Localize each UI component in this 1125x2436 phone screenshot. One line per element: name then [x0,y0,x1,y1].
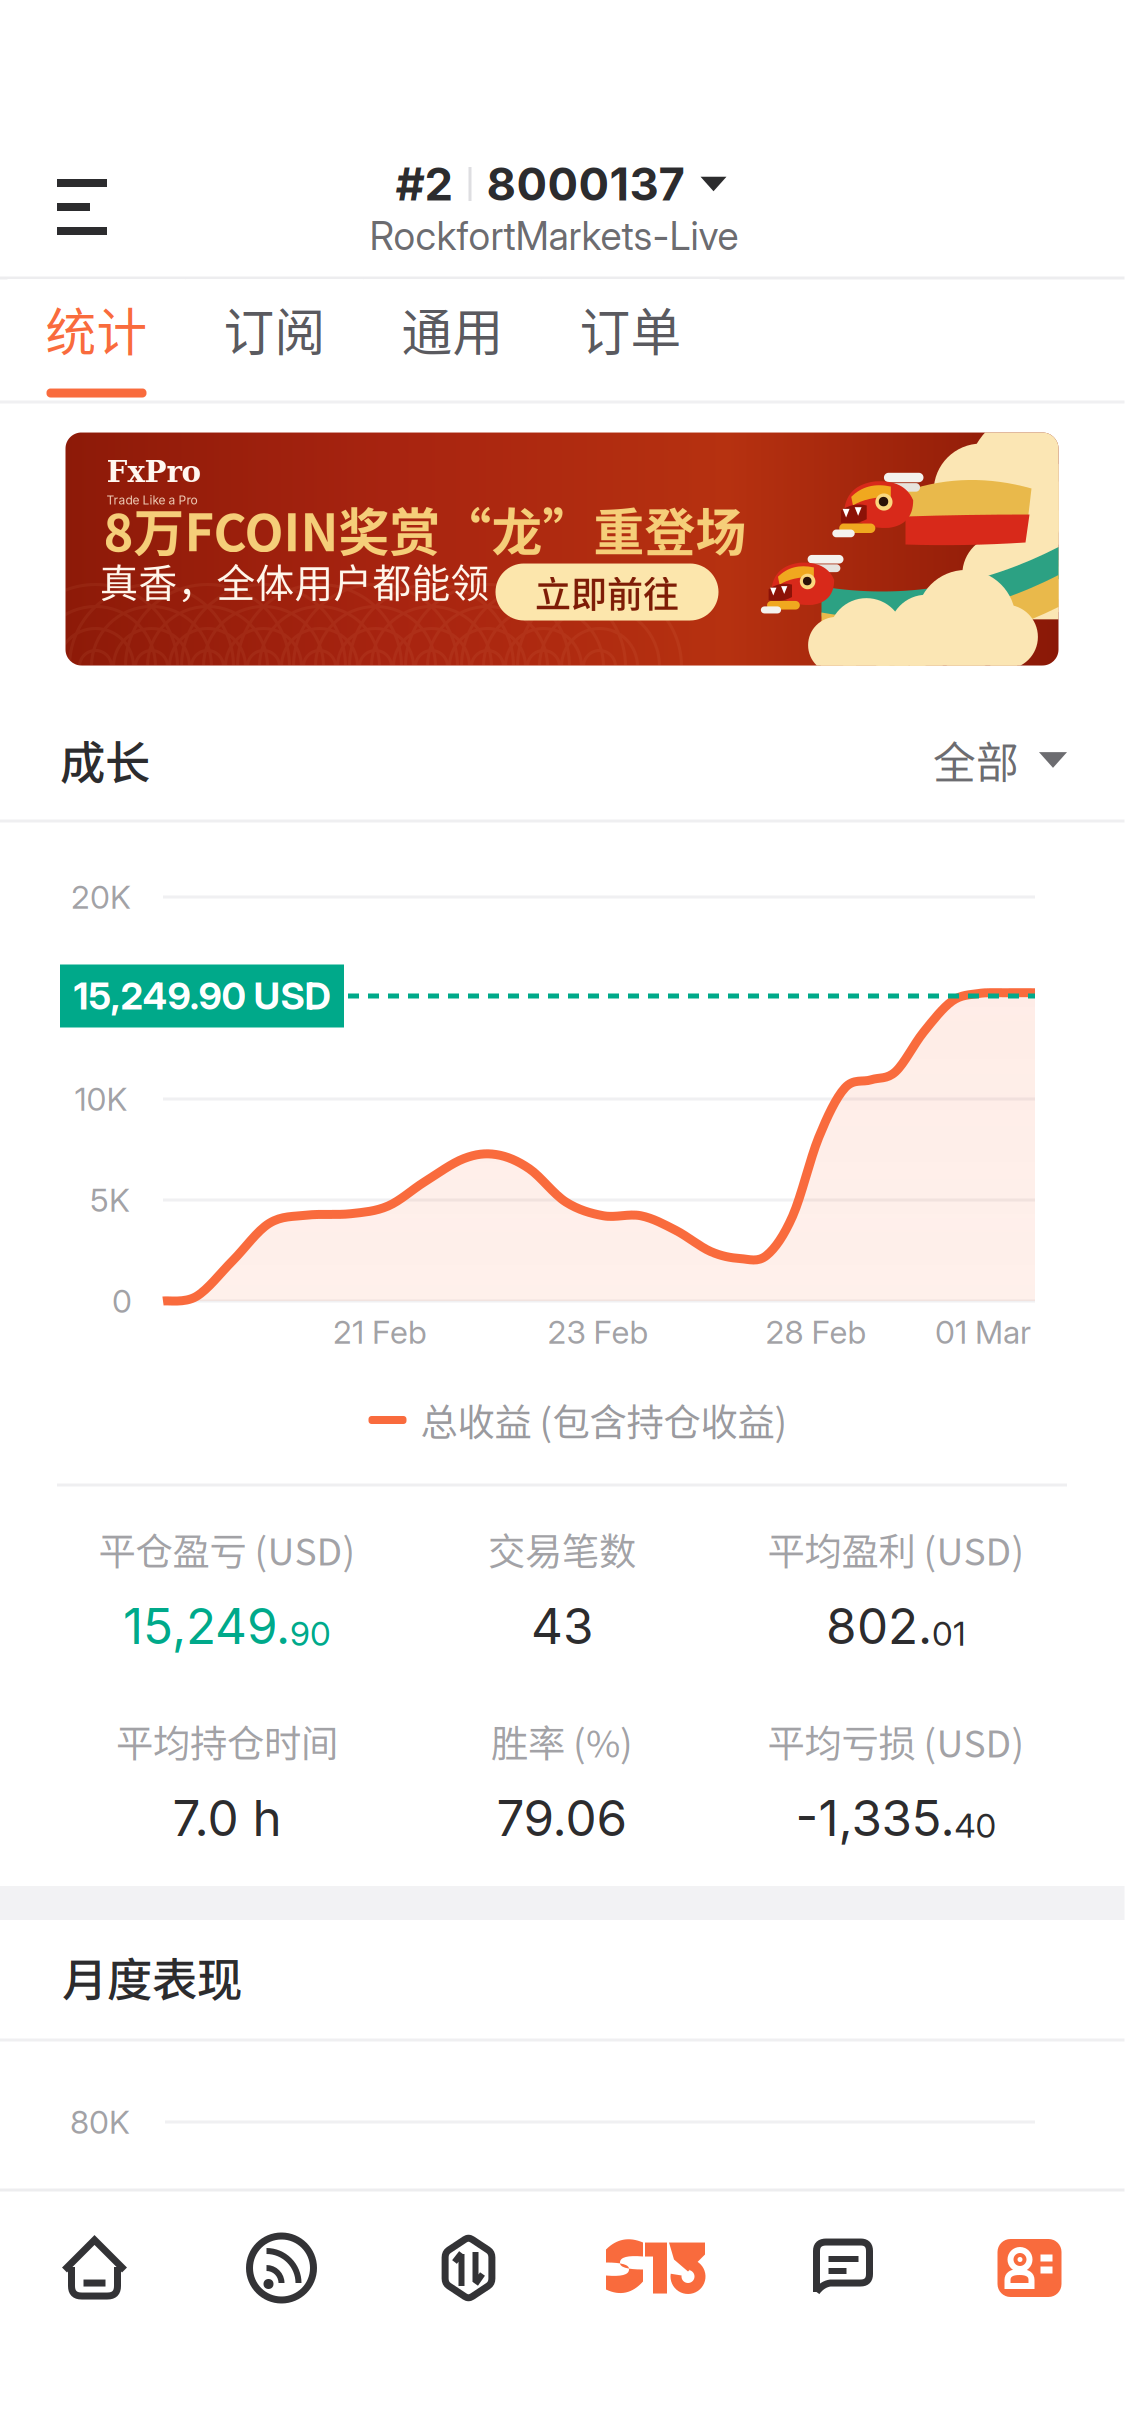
button[interactable]: 订阅 [185,279,363,401]
staticText: 月度表现 [62,1944,242,2010]
staticText: 胜率 (%) [491,1714,633,1768]
staticText: FxPro [106,454,201,489]
staticText: 10K [74,1080,127,1118]
staticText: 真香，全体用户都能领 [99,552,489,608]
button[interactable]: 统计 [7,279,185,401]
staticText: RockfortMarkets-Live [369,213,738,259]
staticText: 8000137 [486,157,684,211]
staticText: 统计 [45,292,147,366]
staticText: 成长 [60,727,150,793]
button[interactable]: Profile [936,2208,1123,2328]
staticText: 20K [71,878,131,916]
staticText: 40 [954,1805,996,1846]
staticText: Trade Like a Pro [106,493,197,507]
button[interactable]: 全部 [919,705,1081,815]
staticText: 7.0 h [172,1788,281,1848]
staticText: 79.06 [496,1788,627,1848]
staticText: 43 [531,1596,593,1656]
button[interactable]: Signals [188,2208,375,2328]
staticText: 通用 [401,292,503,366]
staticText: #2 [395,157,453,211]
staticText: -1,335. [795,1788,954,1848]
staticText: 5K [90,1181,130,1219]
button[interactable]: FxPro [65,432,1058,665]
staticText: 全部 [933,729,1019,791]
staticText: 订阅 [223,292,325,366]
staticText: 平均亏损 (USD) [767,1714,1024,1768]
staticText: 0 [112,1282,132,1320]
staticText: 802. [826,1596,932,1656]
button[interactable]: 订单 [541,279,719,401]
button[interactable]: Menu [7,142,157,272]
button[interactable]: #2 [395,147,726,221]
staticText: 8万FCOIN奖赏“龙”重登场 [103,492,746,566]
button[interactable]: Messages [749,2208,936,2328]
staticText: 订单 [579,292,681,366]
staticText: 立即前往 [535,566,679,618]
staticText: 交易笔数 [488,1522,636,1576]
button[interactable]: 通用 [363,279,541,401]
button[interactable]: S13 [562,2208,749,2328]
staticText: 23 Feb [547,1313,648,1351]
staticText: 01 Mar [935,1313,1031,1351]
staticText: 80K [70,2103,130,2141]
staticText: 平均持仓时间 [116,1714,338,1768]
staticText: 15,249.90 USD [73,973,330,1019]
staticText: 平仓盈亏 (USD) [98,1522,355,1576]
staticText: 01 [932,1613,966,1654]
button[interactable]: Trade [375,2208,562,2328]
button[interactable]: Home [1,2208,188,2328]
staticText: 总收益 (包含持仓收益) [420,1393,787,1447]
staticText: 平均盈利 (USD) [767,1522,1024,1576]
staticText: 21 Feb [333,1313,427,1351]
staticText: 90 [290,1613,331,1654]
staticText: 15,249. [123,1596,290,1656]
staticText: 28 Feb [765,1313,866,1351]
